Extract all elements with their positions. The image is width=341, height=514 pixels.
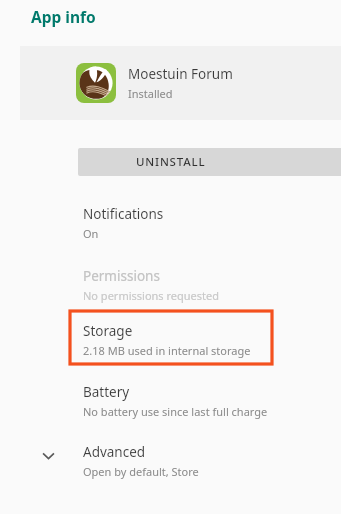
staticText: Open by default, Store (83, 464, 199, 479)
staticText: Notifications (83, 205, 164, 223)
button[interactable]: Expand advanced settings (0, 434, 341, 482)
staticText: No battery use since last full charge (83, 404, 268, 419)
button[interactable]: Permissions (70, 258, 341, 312)
staticText: Moestuin Forum (128, 65, 233, 83)
staticText: No permissions requested (83, 288, 219, 303)
staticText: App info (31, 6, 96, 27)
staticText: Storage (83, 322, 133, 340)
button[interactable]: UNINSTALL (78, 148, 341, 176)
staticText: 2.18 MB used in internal storage (83, 343, 251, 358)
staticText: Permissions (83, 267, 160, 285)
staticText: UNINSTALL (136, 154, 206, 170)
button[interactable]: Battery (70, 374, 341, 428)
staticText: Battery (83, 383, 130, 401)
button[interactable]: Notifications (70, 196, 341, 250)
staticText: Installed (128, 86, 173, 101)
button[interactable]: Moestuin Forum (20, 46, 341, 120)
staticText: On (83, 226, 99, 241)
other: Expand advanced settings (40, 447, 57, 464)
staticText: Advanced (83, 443, 146, 461)
button[interactable]: Storage (70, 311, 272, 364)
